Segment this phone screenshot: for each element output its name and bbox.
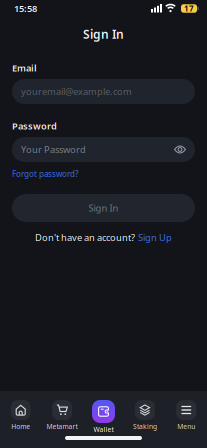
button[interactable]: Menu bbox=[166, 400, 207, 431]
staticText: Forgot password? bbox=[12, 169, 78, 179]
staticText: Menu bbox=[177, 422, 195, 431]
button[interactable]: Home bbox=[0, 400, 41, 431]
button[interactable]: Sign Up bbox=[138, 231, 172, 244]
button[interactable]: Sign In bbox=[12, 194, 195, 222]
staticText: Wallet bbox=[93, 425, 113, 434]
staticText: Email bbox=[12, 62, 37, 74]
button[interactable]: Your Password bbox=[12, 137, 195, 162]
button[interactable]: youremail@example.com bbox=[12, 79, 195, 104]
staticText: Sign In bbox=[88, 202, 118, 214]
staticText: youremail@example.com bbox=[21, 85, 132, 98]
staticText: Don't have an account? bbox=[35, 231, 135, 244]
staticText: 15:58 bbox=[14, 2, 37, 15]
button[interactable]: Metamart bbox=[41, 400, 83, 431]
staticText: Sign Up bbox=[138, 231, 172, 244]
staticText: Metamart bbox=[47, 422, 78, 431]
button[interactable]: Show password bbox=[174, 144, 195, 154]
staticText: Password bbox=[12, 120, 57, 132]
staticText: Home bbox=[11, 422, 30, 431]
staticText: Staking bbox=[133, 422, 157, 431]
staticText: Your Password bbox=[21, 143, 86, 156]
staticText: 17 bbox=[184, 3, 194, 14]
button[interactable]: Staking bbox=[124, 400, 166, 431]
button[interactable]: Wallet bbox=[83, 400, 124, 434]
staticText: Sign In bbox=[83, 26, 124, 42]
button[interactable]: Forgot password? bbox=[12, 169, 78, 179]
